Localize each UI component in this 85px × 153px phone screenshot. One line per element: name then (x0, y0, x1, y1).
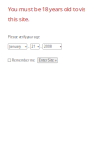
staticText: 2008 (44, 44, 52, 48)
staticText: - (41, 44, 42, 48)
staticText: Please verify your age (8, 35, 40, 39)
staticText: ▾ (25, 45, 26, 48)
staticText: Enter Site » (39, 58, 56, 62)
button[interactable]: January (8, 44, 27, 49)
staticText: ▾ (38, 45, 39, 48)
staticText: January (9, 44, 20, 48)
staticText: ▾ (60, 45, 61, 48)
button[interactable]: 21 (30, 44, 39, 49)
button[interactable]: 2008 (43, 44, 62, 49)
staticText: 21 (32, 44, 36, 48)
staticText: You must be 18 years old to visit (8, 5, 85, 13)
staticText: Remember me (12, 58, 35, 62)
button[interactable]: Enter Site » (37, 58, 57, 63)
staticText: - (28, 44, 29, 48)
staticText: this site. (8, 15, 30, 23)
button[interactable]: Remember me (8, 57, 35, 63)
